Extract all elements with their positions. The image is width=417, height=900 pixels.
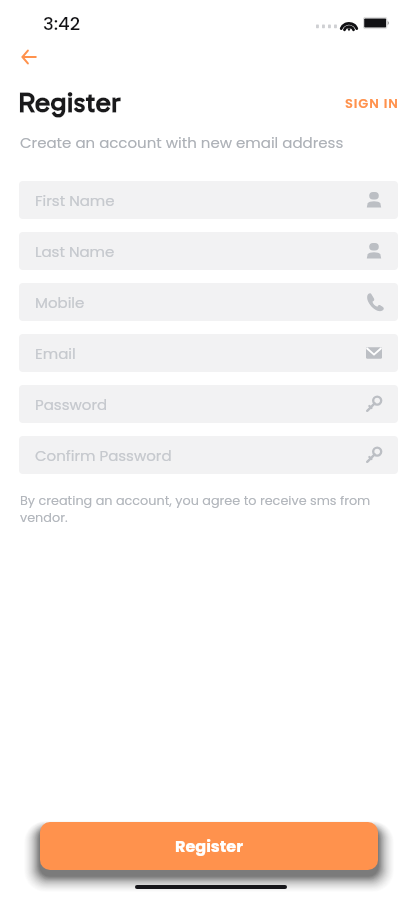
- staticText: Register: [18, 85, 121, 119]
- button[interactable]: First Name: [19, 181, 398, 219]
- staticText: Create an account with new email address: [20, 132, 344, 153]
- button[interactable]: Mobile: [19, 283, 398, 321]
- staticText: Confirm Password: [35, 445, 172, 466]
- button[interactable]: Email: [19, 334, 398, 372]
- staticText: Mobile: [35, 292, 85, 313]
- button[interactable]: Confirm Password: [19, 436, 398, 474]
- button[interactable]: SIGN IN: [345, 94, 399, 112]
- staticText: 3:42: [43, 11, 81, 36]
- button[interactable]: Last Name: [19, 232, 398, 270]
- button[interactable]: Register: [40, 822, 378, 870]
- staticText: Last Name: [35, 241, 115, 262]
- staticText: Email: [35, 343, 76, 364]
- staticText: Password: [35, 394, 108, 415]
- button[interactable]: Back: [13, 46, 45, 68]
- staticText: Register: [175, 835, 244, 857]
- staticText: First Name: [35, 190, 115, 211]
- staticText: SIGN IN: [345, 94, 399, 112]
- staticText: By creating an account, you agree to rec…: [20, 492, 376, 526]
- button[interactable]: Password: [19, 385, 398, 423]
